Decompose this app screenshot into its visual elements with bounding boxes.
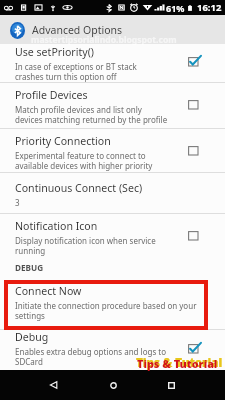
staticText: In case of exceptions or BT stack crashe… [15, 61, 137, 82]
button[interactable]: Use setPriority() [0, 44, 225, 83]
staticText: Tips & Tutorial [137, 356, 218, 371]
staticText: Enables extra debug options and logs to … [15, 346, 167, 367]
button[interactable]: Connect Now [0, 280, 225, 330]
staticText: Match profile devices and list only devi… [15, 104, 168, 125]
staticText: mastertipsorialindo.blogspot.com [31, 34, 177, 46]
button[interactable]: Notification Icon [0, 214, 225, 262]
staticText: Tips & Tutorial [136, 355, 223, 371]
button[interactable]: Debug [0, 330, 225, 370]
button[interactable]: Profile Devices [0, 83, 225, 129]
staticText: Advanced Options [32, 23, 123, 37]
button[interactable]: Back [42, 373, 66, 397]
button[interactable]: Priority Connection [0, 129, 225, 173]
staticText: 16:12 [197, 1, 222, 14]
staticText: DEBUG [15, 262, 44, 273]
staticText: Profile Devices [15, 88, 88, 102]
staticText: Experimental feature to connect to avail… [15, 150, 153, 171]
staticText: Connect Now [15, 284, 82, 298]
button[interactable]: Advanced Options [0, 15, 225, 44]
staticText: 3 [15, 197, 20, 208]
button[interactable]: Home [101, 373, 125, 397]
staticText: Continuous Connect (Sec) [15, 181, 143, 195]
staticText: Display notification icon when service r… [15, 235, 156, 256]
staticText: Use setPriority() [15, 45, 95, 59]
staticText: Initiate the connection procedure based … [15, 300, 197, 321]
button[interactable]: Continuous Connect (Sec) [0, 173, 225, 214]
staticText: Notification Icon [15, 219, 98, 233]
button[interactable]: Recents [159, 373, 183, 397]
staticText: Priority Connection [15, 134, 111, 148]
staticText: Debug [15, 330, 49, 344]
staticText: 61% [166, 2, 185, 14]
